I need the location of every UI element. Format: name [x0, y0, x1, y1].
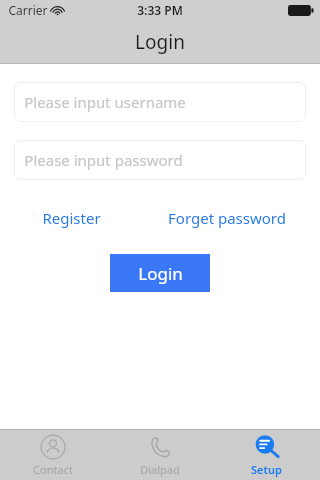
staticText: Contact — [33, 462, 73, 477]
staticText: Please input password — [24, 150, 183, 170]
button[interactable]: Contact — [0, 430, 106, 480]
staticText: Login — [138, 262, 183, 285]
staticText: Dialpad — [140, 462, 180, 477]
button[interactable]: Please input username — [14, 82, 306, 122]
staticText: Login — [135, 29, 185, 55]
button[interactable]: Login — [110, 254, 210, 292]
staticText: Forget password — [168, 208, 286, 228]
button[interactable]: Register — [30, 204, 113, 232]
staticText: Register — [42, 208, 101, 228]
staticText: Setup — [251, 462, 282, 477]
button[interactable]: Forget password — [164, 204, 290, 232]
staticText: 3:33 PM — [137, 2, 183, 18]
button[interactable]: Please input password — [14, 140, 306, 180]
staticText: Carrier — [8, 2, 48, 18]
staticText: Please input username — [24, 92, 186, 112]
button[interactable]: Dialpad — [106, 430, 213, 480]
button[interactable]: Setup — [213, 430, 320, 480]
